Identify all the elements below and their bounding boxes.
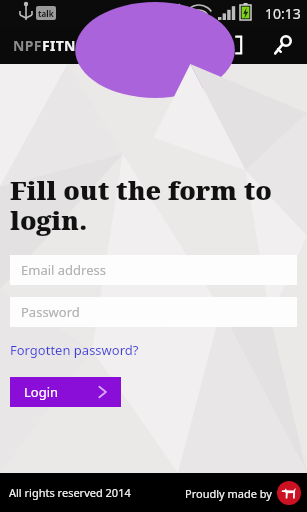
staticText: All rights reserved 2014	[9, 485, 131, 500]
button[interactable]: Email address	[10, 255, 297, 285]
staticText: Proudly made by	[185, 486, 272, 501]
button[interactable]: Forgotten password?	[10, 341, 139, 359]
button[interactable]: NPF	[13, 36, 100, 55]
staticText: Forgotten password?	[10, 341, 139, 359]
button[interactable]: Password	[10, 297, 297, 327]
button[interactable]: Proudly made by	[185, 481, 301, 505]
button[interactable]: Password	[267, 30, 297, 60]
button[interactable]: Sign in	[217, 30, 247, 60]
staticText: talk	[38, 8, 54, 19]
other: Agency logo	[277, 481, 301, 505]
staticText: NPF	[13, 36, 42, 55]
staticText: Email address	[21, 261, 106, 279]
staticText: Login	[24, 383, 59, 401]
staticText: Password	[21, 303, 80, 321]
button[interactable]: Login	[10, 377, 121, 407]
staticText: FITNESS	[42, 36, 100, 55]
staticText: 10:13	[265, 4, 301, 23]
staticText: Fill out the form to login.	[10, 172, 272, 237]
